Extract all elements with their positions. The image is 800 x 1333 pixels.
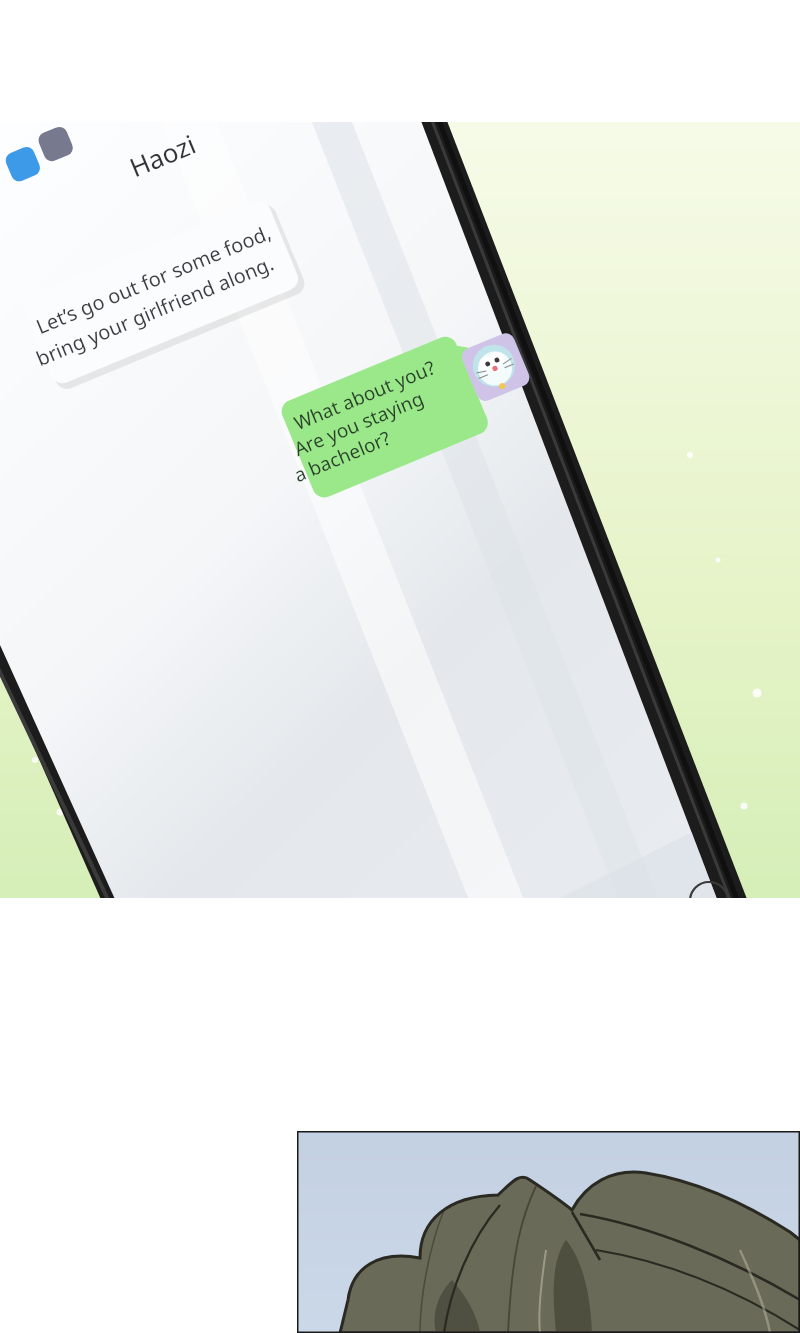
button[interactable]: Comic episode page	[0, 0, 800, 1333]
